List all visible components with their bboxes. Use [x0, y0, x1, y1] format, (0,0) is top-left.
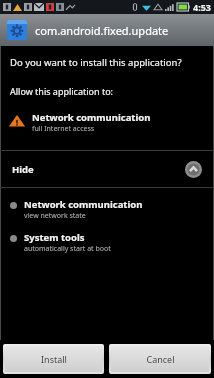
staticText: 4:53: [193, 1, 211, 13]
button[interactable]: Network communication: [0, 196, 214, 223]
staticText: view network state: [24, 211, 86, 221]
staticText: Allow this application to:: [10, 85, 114, 97]
staticText: System tools: [24, 231, 85, 244]
staticText: Do you want to install this application?: [10, 56, 182, 69]
button[interactable]: Hide: [0, 151, 214, 187]
button[interactable]: Network communication: [0, 109, 214, 136]
staticText: Network communication: [32, 111, 151, 124]
staticText: com.android.fixed.update: [35, 23, 169, 38]
button[interactable]: System tools: [0, 229, 214, 256]
other: Collapse: [185, 161, 202, 178]
staticText: Cancel: [146, 353, 175, 365]
staticText: automatically start at boot: [24, 244, 111, 254]
staticText: Install: [41, 353, 67, 365]
staticText: Network communication: [24, 198, 143, 211]
button[interactable]: Cancel: [109, 344, 211, 374]
button[interactable]: Install: [3, 344, 104, 374]
staticText: Hide: [12, 163, 34, 176]
staticText: full Internet access: [32, 124, 95, 134]
